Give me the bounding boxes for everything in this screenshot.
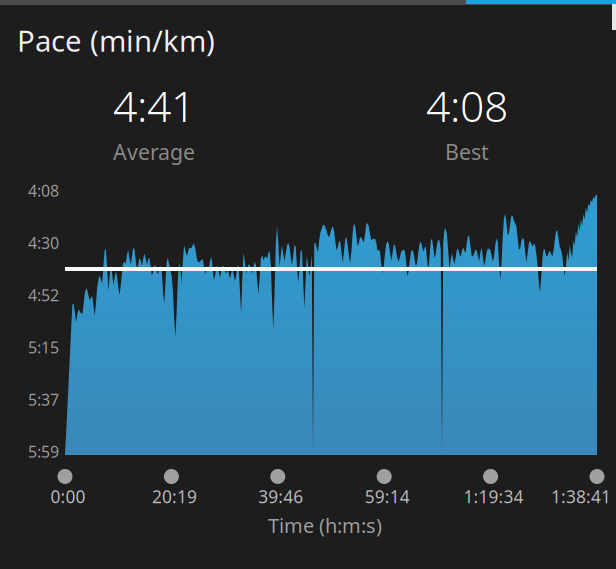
staticText: 5:15 (28, 337, 59, 358)
staticText: 5:59 (28, 441, 59, 462)
staticText: 1:19:34 (464, 485, 524, 508)
staticText: Best (445, 138, 489, 166)
staticText: Pace (min/km) (17, 21, 215, 60)
staticText: 20:19 (152, 485, 197, 508)
staticText: 4:08 (426, 77, 508, 134)
staticText: 4:30 (28, 232, 59, 253)
staticText: 4:08 (28, 180, 59, 201)
staticText: Average (113, 138, 195, 166)
staticText: Time (h:m:s) (268, 512, 382, 539)
staticText: 0:00 (50, 485, 85, 508)
staticText: 59:14 (365, 485, 410, 508)
staticText: 39:46 (258, 485, 303, 508)
staticText: 4:52 (28, 284, 59, 306)
staticText: 1:38:41 (551, 485, 611, 508)
staticText: 5:37 (28, 389, 59, 410)
staticText: 4:41 (113, 77, 195, 134)
